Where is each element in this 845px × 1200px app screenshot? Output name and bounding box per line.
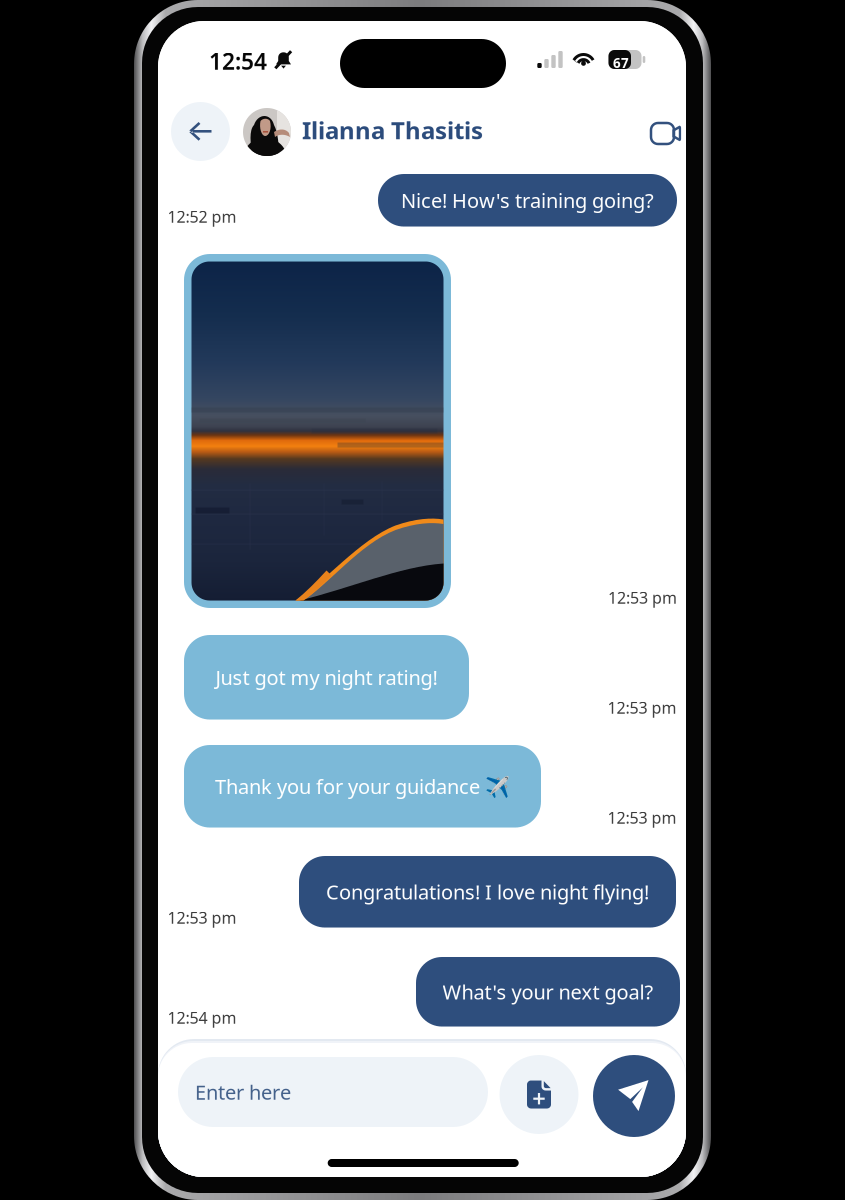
staticText: Ilianna Thasitis bbox=[302, 114, 483, 146]
staticText: 12:53 pm bbox=[168, 907, 237, 928]
button[interactable]: Back bbox=[171, 102, 230, 161]
button[interactable]: Send bbox=[593, 1055, 675, 1137]
staticText: Just got my night rating! bbox=[215, 664, 437, 691]
staticText: 12:53 pm bbox=[607, 807, 676, 828]
staticText: 12:54 bbox=[209, 46, 267, 76]
staticText: 12:53 pm bbox=[607, 697, 676, 718]
staticText: Nice! How's training going? bbox=[401, 187, 654, 214]
button[interactable]: Attach file bbox=[499, 1055, 578, 1134]
staticText: 12:53 pm bbox=[608, 587, 677, 608]
staticText: Thank you for your guidance ✈️ bbox=[215, 773, 510, 800]
staticText: What's your next goal? bbox=[442, 978, 653, 1005]
staticText: Enter here bbox=[195, 1079, 291, 1105]
button[interactable]: Video call bbox=[647, 119, 678, 144]
staticText: 67 bbox=[613, 54, 629, 72]
staticText: 12:52 pm bbox=[167, 206, 236, 227]
staticText: 12:54 pm bbox=[167, 1007, 236, 1028]
staticText: Congratulations! I love night flying! bbox=[326, 878, 649, 905]
button[interactable]: Enter here bbox=[178, 1057, 488, 1127]
